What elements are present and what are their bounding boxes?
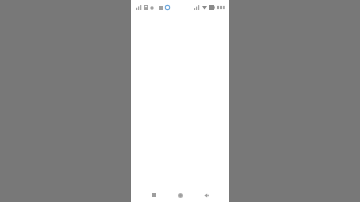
button[interactable]: Back <box>199 188 213 202</box>
button[interactable]: Home <box>173 188 187 202</box>
button[interactable]: Recent apps <box>147 188 161 202</box>
